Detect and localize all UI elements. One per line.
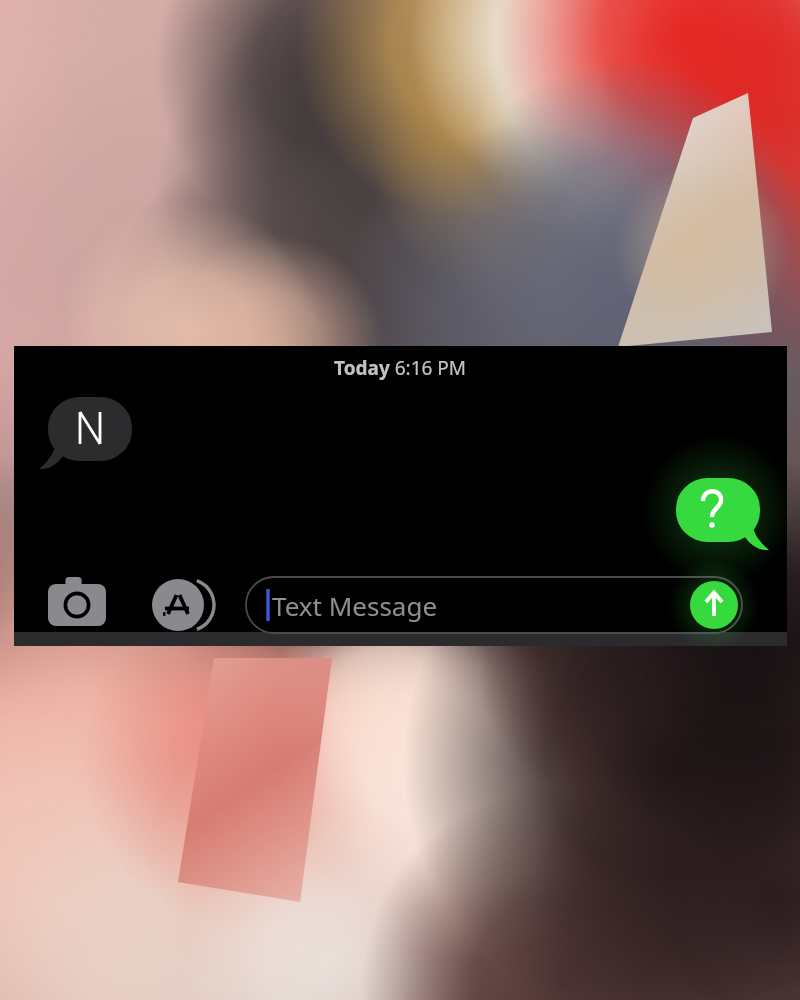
- button[interactable]: Message from N: [40, 392, 144, 472]
- button[interactable]: Camera: [38, 570, 118, 634]
- button[interactable]: Text Message input: [246, 577, 742, 633]
- button[interactable]: Send: [688, 578, 740, 630]
- button[interactable]: Sent message: [668, 473, 772, 553]
- staticText: Today 6:16 PM: [334, 355, 467, 381]
- button[interactable]: Apps: [145, 572, 211, 632]
- staticText: Text Message: [272, 588, 438, 623]
